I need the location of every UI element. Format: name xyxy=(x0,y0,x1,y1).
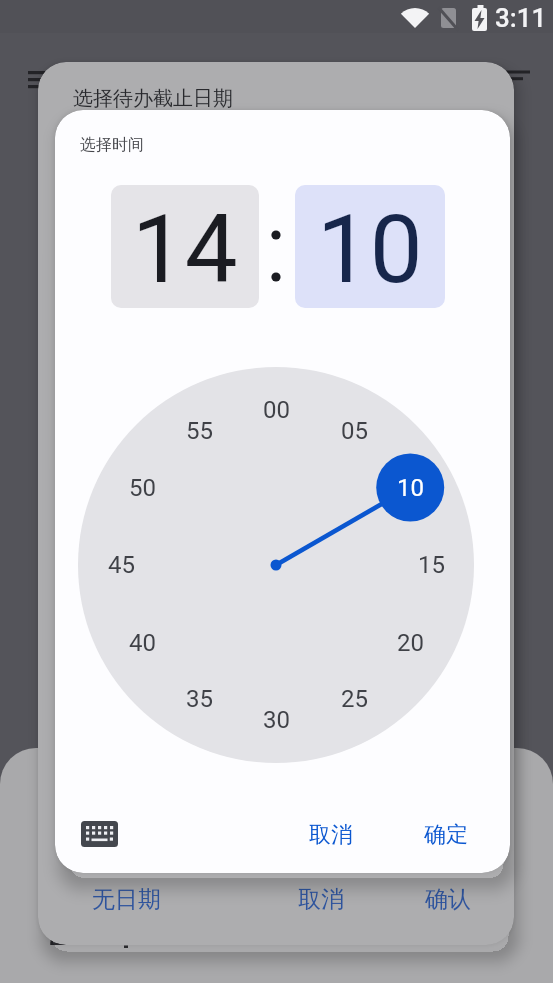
staticText: 取消 xyxy=(298,885,344,914)
staticText: 05 xyxy=(341,417,368,445)
staticText: 20 xyxy=(397,629,424,657)
button[interactable]: 00 xyxy=(196,380,356,440)
staticText: 25 xyxy=(341,685,368,713)
staticText: 取消 xyxy=(309,821,353,849)
button[interactable]: 40 xyxy=(62,613,222,673)
staticText: 选择待办截止日期 xyxy=(73,86,233,111)
button[interactable]: 20 xyxy=(330,613,490,673)
staticText: 14 xyxy=(132,195,238,305)
button[interactable]: 14 xyxy=(111,185,259,308)
button[interactable]: 05 xyxy=(274,401,434,461)
button[interactable]: 10 xyxy=(295,185,445,308)
staticText: 选择时间 xyxy=(80,135,144,155)
staticText: 确认 xyxy=(425,885,471,914)
button[interactable]: 15 xyxy=(351,535,511,595)
staticText: 无日期 xyxy=(92,885,161,914)
staticText: 10 xyxy=(397,474,424,502)
button[interactable]: 35 xyxy=(119,669,279,729)
staticText: 确定 xyxy=(424,821,468,849)
button[interactable]: 取消 xyxy=(251,805,411,865)
button[interactable]: 确定 xyxy=(366,805,526,865)
staticText: 45 xyxy=(108,551,135,579)
staticText: 35 xyxy=(186,685,213,713)
staticText: 15 xyxy=(418,551,445,579)
staticText: 3:11 xyxy=(495,3,547,33)
staticText: 40 xyxy=(129,629,156,657)
button[interactable]: 10 xyxy=(330,458,490,518)
staticText: 55 xyxy=(186,417,213,445)
button[interactable]: 25 xyxy=(274,669,434,729)
staticText: 00 xyxy=(263,396,290,424)
button[interactable]: 30 xyxy=(196,690,356,750)
staticText: 50 xyxy=(129,474,156,502)
staticText: 10 xyxy=(317,195,423,305)
staticText: 30 xyxy=(263,706,290,734)
button[interactable]: 50 xyxy=(62,458,222,518)
button[interactable] xyxy=(74,815,124,853)
button[interactable]: 55 xyxy=(119,401,279,461)
button[interactable]: 45 xyxy=(41,535,201,595)
